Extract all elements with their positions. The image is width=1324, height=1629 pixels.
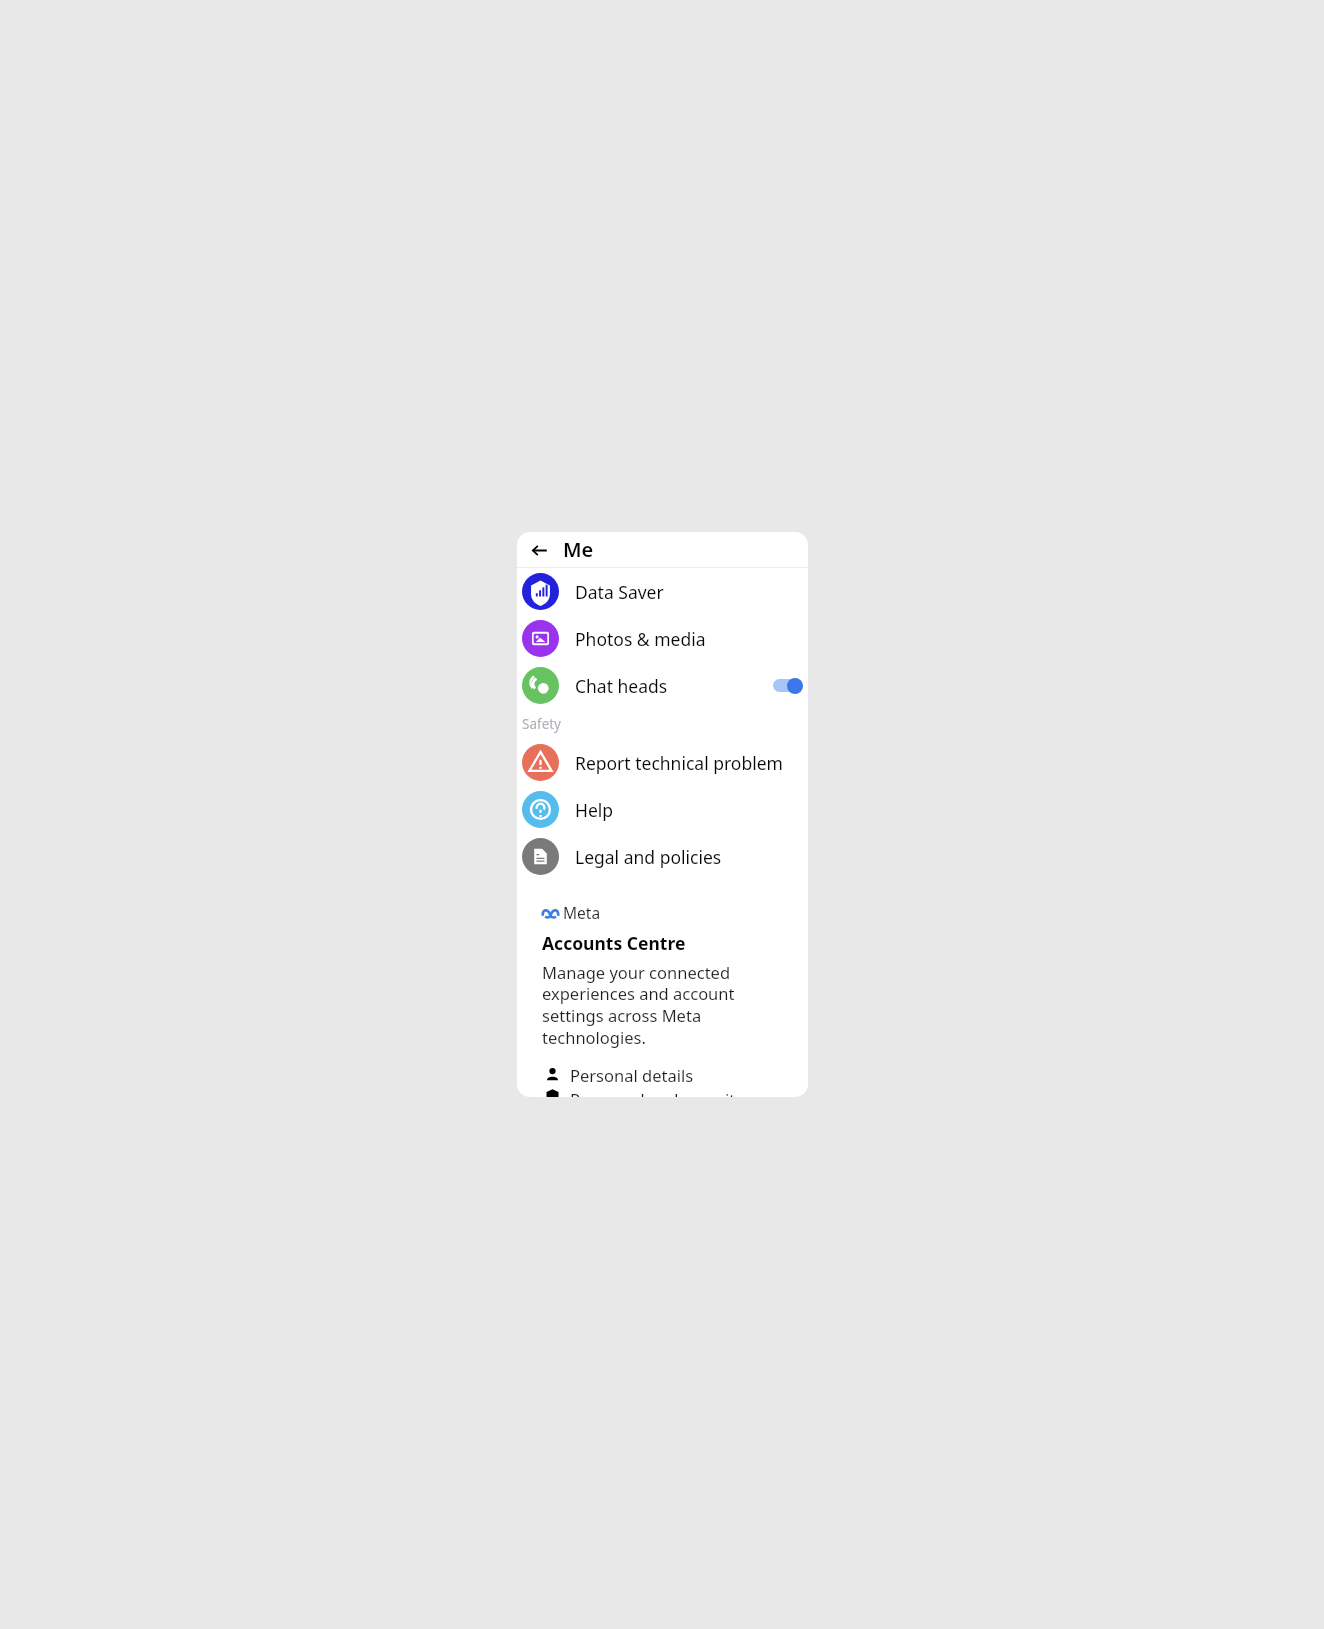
staticText: Accounts Centre: [542, 931, 686, 955]
button[interactable]: Report technical problem: [517, 739, 808, 786]
button[interactable]: Photos & media: [517, 615, 808, 662]
button[interactable]: Back: [524, 535, 554, 565]
button[interactable]: Data Saver: [517, 568, 808, 615]
staticText: Report technical problem: [575, 751, 803, 775]
staticText: Personal details: [570, 1064, 694, 1086]
staticText: Photos & media: [575, 627, 803, 651]
staticText: Legal and policies: [575, 845, 803, 869]
button[interactable]: Personal details: [542, 1061, 792, 1088]
staticText: Manage your connected experiences and ac…: [542, 961, 792, 1049]
staticText: Me: [563, 536, 594, 563]
staticText: Meta: [563, 902, 601, 923]
staticText: Safety: [522, 715, 562, 733]
staticText: Data Saver: [575, 580, 803, 604]
button[interactable]: Help: [517, 786, 808, 833]
staticText: Chat heads: [575, 674, 773, 698]
staticText: Password and security: [570, 1088, 744, 1097]
button[interactable]: Chat heads: [517, 662, 808, 709]
button[interactable]: Legal and policies: [517, 833, 808, 880]
button[interactable]: Password and security: [542, 1088, 792, 1097]
button[interactable]: Chat heads toggle: [773, 677, 803, 694]
staticText: Help: [575, 798, 803, 822]
